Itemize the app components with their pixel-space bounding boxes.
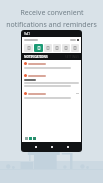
- button[interactable]: Tab 2: [34, 44, 43, 52]
- staticText: notifications and reminders: [6, 20, 97, 30]
- staticText: NOTIFICATIONS: [24, 55, 48, 59]
- button[interactable]: Tab 5: [62, 44, 70, 52]
- button[interactable]: [22, 72, 81, 90]
- button[interactable]: Tab 4: [53, 44, 61, 52]
- staticText: 9:41: [24, 32, 30, 36]
- button[interactable]: Tab 1: [24, 44, 33, 52]
- button[interactable]: Tab 3: [44, 44, 52, 52]
- button[interactable]: Home: [49, 144, 54, 149]
- button[interactable]: Back: [33, 144, 38, 149]
- button[interactable]: Tab 6: [71, 44, 79, 52]
- staticText: Receive convenient: [20, 8, 84, 18]
- button[interactable]: [22, 60, 81, 72]
- button[interactable]: [22, 90, 81, 102]
- staticText: SETTINGS: [65, 55, 79, 59]
- button[interactable]: Recents: [65, 144, 70, 149]
